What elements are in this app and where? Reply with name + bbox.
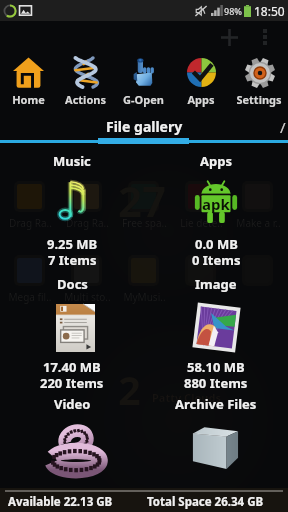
staticText: Drag Ra.. — [66, 216, 109, 230]
staticText: 27 — [118, 172, 167, 229]
staticText: Settings — [236, 92, 282, 107]
staticText: MyMusi.. — [123, 290, 166, 304]
button[interactable]: G-Open — [114, 57, 172, 107]
staticText: 880 Items — [184, 374, 248, 392]
staticText: apk — [202, 194, 230, 214]
staticText: 58.10 MB — [187, 358, 245, 376]
button[interactable]: Settings — [230, 57, 288, 107]
staticText: 220 Items — [40, 374, 104, 392]
staticText: / — [280, 117, 286, 137]
staticText: Free spa.. — [122, 216, 167, 230]
staticText: G-Open — [123, 92, 164, 107]
staticText: Home — [12, 92, 45, 107]
staticText: 7 Items — [48, 251, 97, 269]
button[interactable]: Add — [214, 22, 244, 52]
staticText: Multi sto.. — [64, 290, 111, 304]
staticText: Drag Ra.. — [9, 216, 52, 230]
staticText: Available 22.13 GB — [8, 494, 113, 510]
staticText: Archive Files — [175, 395, 257, 413]
button[interactable]: Apps — [172, 57, 230, 107]
staticText: Music — [53, 152, 91, 170]
button[interactable]: Image — [144, 268, 288, 316]
staticText: Make a r.. — [236, 216, 281, 230]
button[interactable]: Archive Files — [144, 389, 288, 453]
button[interactable]: Apps — [144, 145, 288, 193]
button[interactable]: Docs — [0, 268, 144, 316]
button[interactable]: Home — [0, 57, 57, 107]
staticText: Image — [195, 275, 237, 293]
staticText: Total Space 26.34 GB — [147, 494, 264, 510]
button[interactable]: Video — [0, 389, 144, 453]
staticText: File gallery — [106, 117, 183, 136]
staticText: 98% — [224, 5, 242, 17]
staticText: Apps — [200, 152, 232, 170]
staticText: Video — [54, 395, 91, 413]
staticText: 0 Items — [192, 251, 241, 269]
staticText: Docs — [57, 275, 88, 293]
staticText: 9.25 MB — [47, 235, 98, 253]
staticText: 0.0 MB — [195, 235, 238, 253]
staticText: Actions — [65, 92, 106, 107]
button[interactable]: Music — [0, 145, 144, 193]
button[interactable]: File gallery — [90, 117, 199, 136]
button[interactable]: More options — [252, 24, 278, 50]
staticText: Apps — [187, 92, 215, 107]
button[interactable]: Actions — [57, 57, 114, 107]
staticText: Patty Clouds — [152, 390, 221, 405]
staticText: 17.40 MB — [43, 358, 101, 376]
staticText: 2 — [118, 362, 141, 416]
staticText: Lie dete.. — [180, 216, 223, 230]
staticText: Mega fil.. — [8, 290, 52, 304]
staticText: 18:50 — [254, 3, 285, 19]
